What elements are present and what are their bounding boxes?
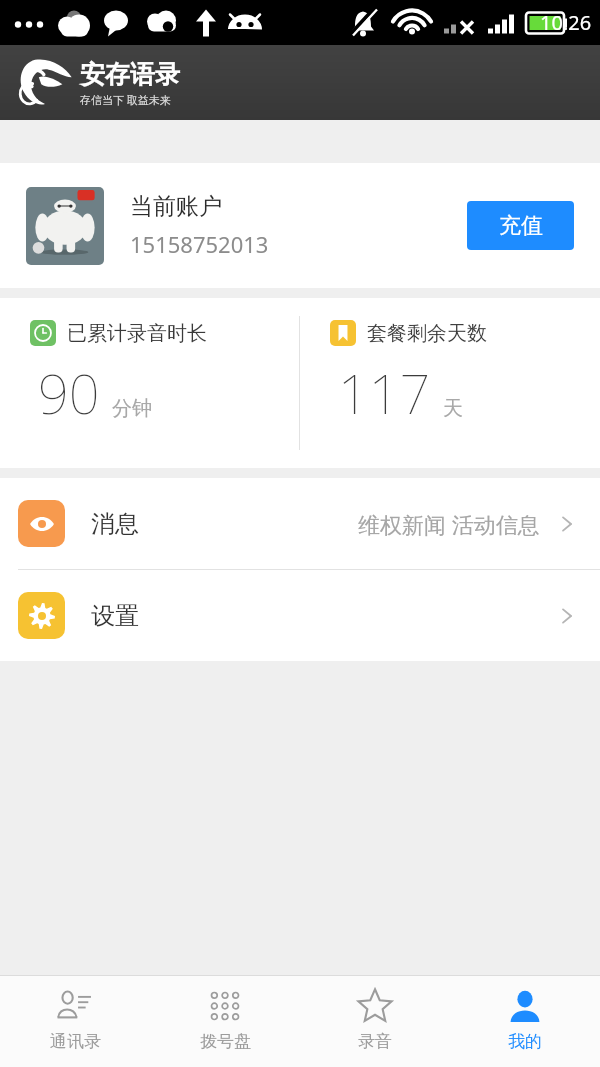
button[interactable]: 通讯录 [0, 976, 150, 1067]
button[interactable]: 设置 [0, 570, 600, 661]
staticText: 通讯录 [50, 1031, 101, 1052]
staticText: 维权新闻 活动信息 [358, 509, 540, 539]
staticText: 分钟 [112, 396, 152, 421]
staticText: 90 [38, 356, 100, 430]
button[interactable]: 消息 [0, 478, 600, 569]
staticText: 10:26 [540, 9, 592, 36]
button[interactable]: 已累计录音时长 [0, 298, 299, 468]
button[interactable]: 拨号盘 [150, 976, 300, 1067]
staticText: 117 [338, 356, 431, 430]
staticText: 存信当下 取益未来 [80, 92, 171, 107]
staticText: 设置 [91, 601, 139, 631]
staticText: 当前账户 [130, 192, 222, 221]
staticText: 拨号盘 [200, 1031, 251, 1052]
staticText: 安存语录 [80, 59, 180, 90]
button[interactable]: 我的 [450, 976, 600, 1067]
staticText: 天 [443, 396, 463, 421]
staticText: 15158752013 [130, 229, 269, 259]
staticText: 我的 [508, 1031, 542, 1052]
button[interactable]: 套餐剩余天数 [300, 298, 600, 468]
staticText: 录音 [358, 1031, 392, 1052]
button[interactable]: 录音 [300, 976, 450, 1067]
staticText: 已累计录音时长 [67, 321, 207, 346]
staticText: 充值 [499, 212, 543, 240]
button[interactable]: 充值 [467, 201, 574, 250]
staticText: 消息 [91, 509, 139, 539]
staticText: 套餐剩余天数 [367, 321, 487, 346]
button[interactable]: 当前账户 [0, 163, 600, 288]
